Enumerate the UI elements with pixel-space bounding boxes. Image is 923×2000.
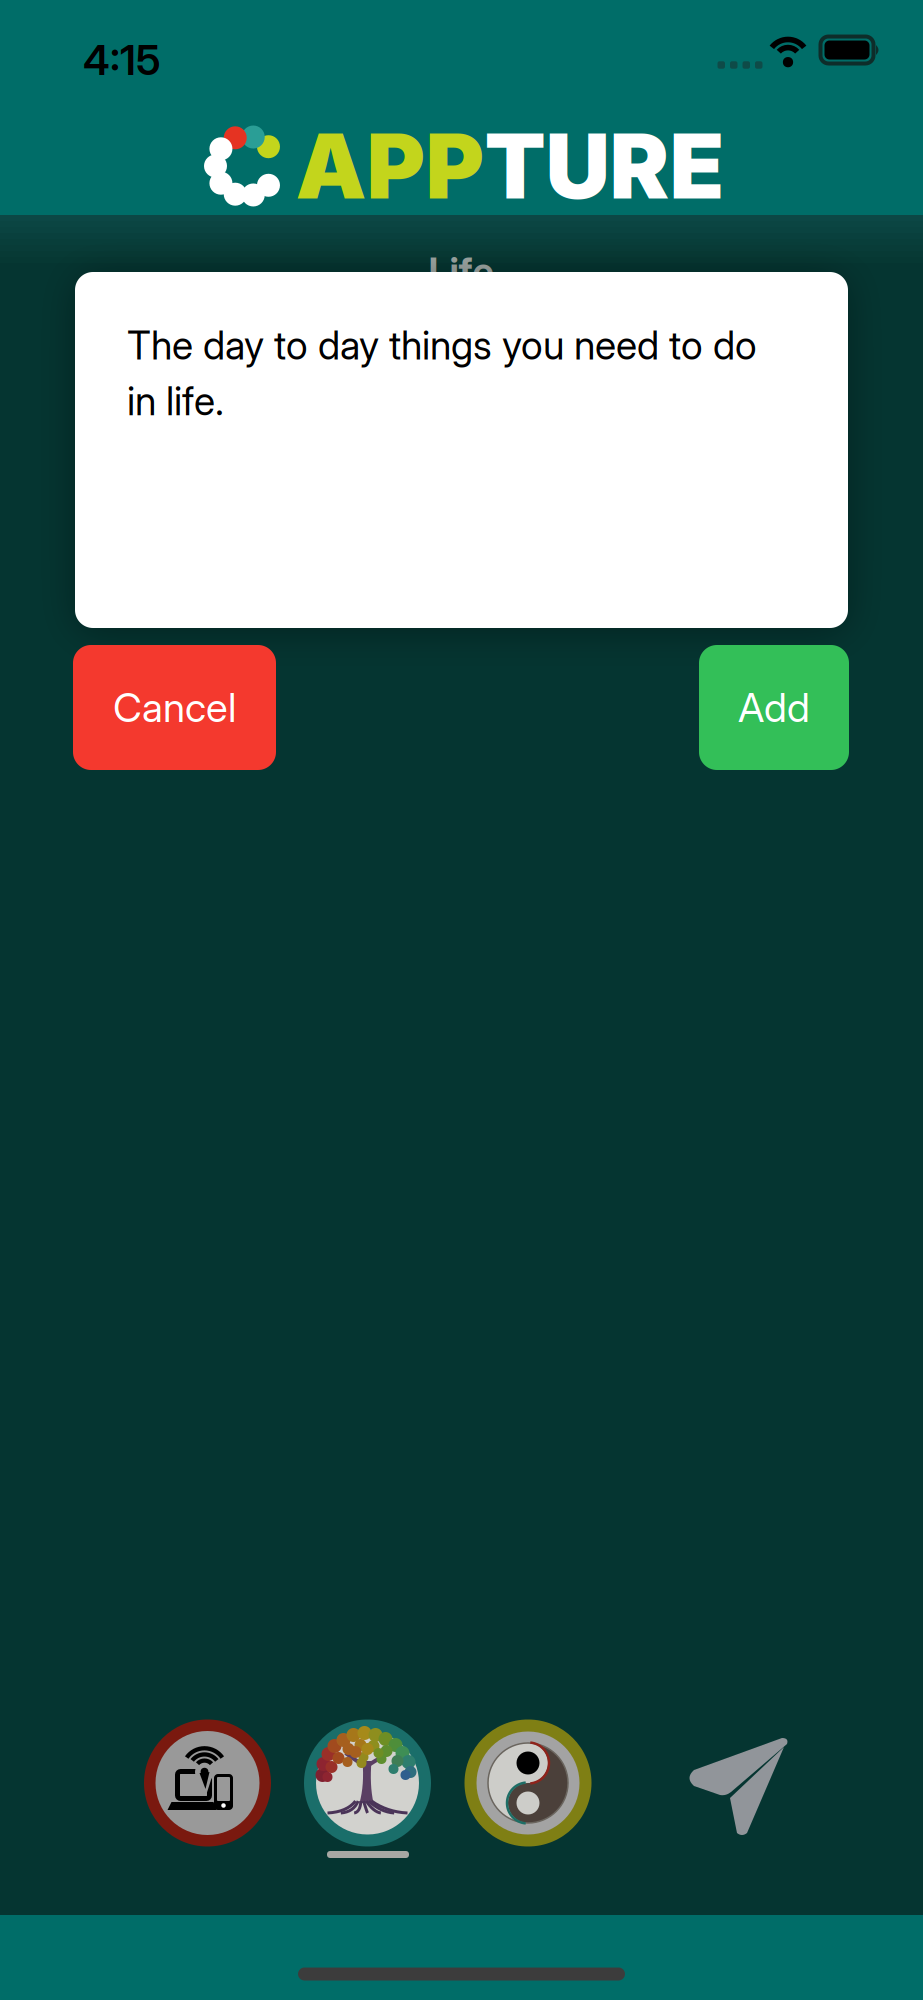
staticText: Cancel: [113, 683, 236, 732]
button[interactable]: [303, 1719, 431, 1847]
staticText: APP: [295, 112, 484, 220]
button[interactable]: The day to day things you need to do in …: [75, 272, 848, 628]
button[interactable]: [143, 1719, 271, 1847]
staticText: TURE: [484, 112, 724, 220]
staticText: Life: [428, 248, 493, 294]
button[interactable]: [690, 1734, 794, 1838]
staticText: 4:15: [83, 35, 161, 85]
button[interactable]: [464, 1719, 592, 1847]
staticText: The day to day things you need to do in …: [127, 322, 757, 425]
button[interactable]: Cancel: [73, 645, 276, 770]
staticText: Add: [738, 683, 810, 732]
button[interactable]: Add: [699, 645, 849, 770]
